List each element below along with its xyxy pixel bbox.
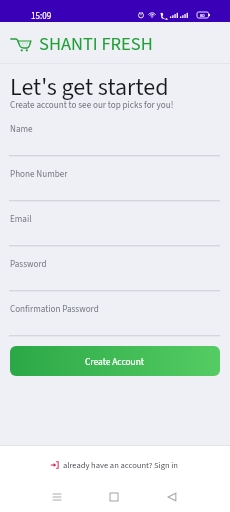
staticText: already have an account? Sign in	[63, 459, 179, 471]
staticText: Confirmation Password	[10, 303, 99, 316]
staticText: Let's get started	[10, 70, 169, 104]
button[interactable]: Password	[0, 246, 230, 291]
staticText: Create Account	[85, 355, 145, 368]
button[interactable]: Email	[0, 201, 230, 246]
staticText: 15:09	[31, 10, 52, 23]
button[interactable]: Name	[0, 111, 230, 156]
button[interactable]: Home	[101, 484, 127, 510]
staticText: SHANTI FRESH	[39, 31, 153, 57]
staticText: 80	[200, 12, 205, 18]
button[interactable]: Create Account	[10, 346, 220, 376]
button[interactable]: Phone Number	[0, 156, 230, 201]
staticText: Password	[10, 258, 47, 271]
button[interactable]: already have an account? Sign in	[0, 454, 230, 476]
button[interactable]: Recents	[44, 484, 70, 510]
staticText: Name	[10, 123, 33, 136]
staticText: Email	[10, 213, 32, 226]
staticText: Phone Number	[10, 168, 68, 181]
staticText: Create account to see our top picks for …	[10, 99, 174, 112]
button[interactable]: Back	[159, 484, 185, 510]
button[interactable]: Confirmation Password	[0, 291, 230, 336]
